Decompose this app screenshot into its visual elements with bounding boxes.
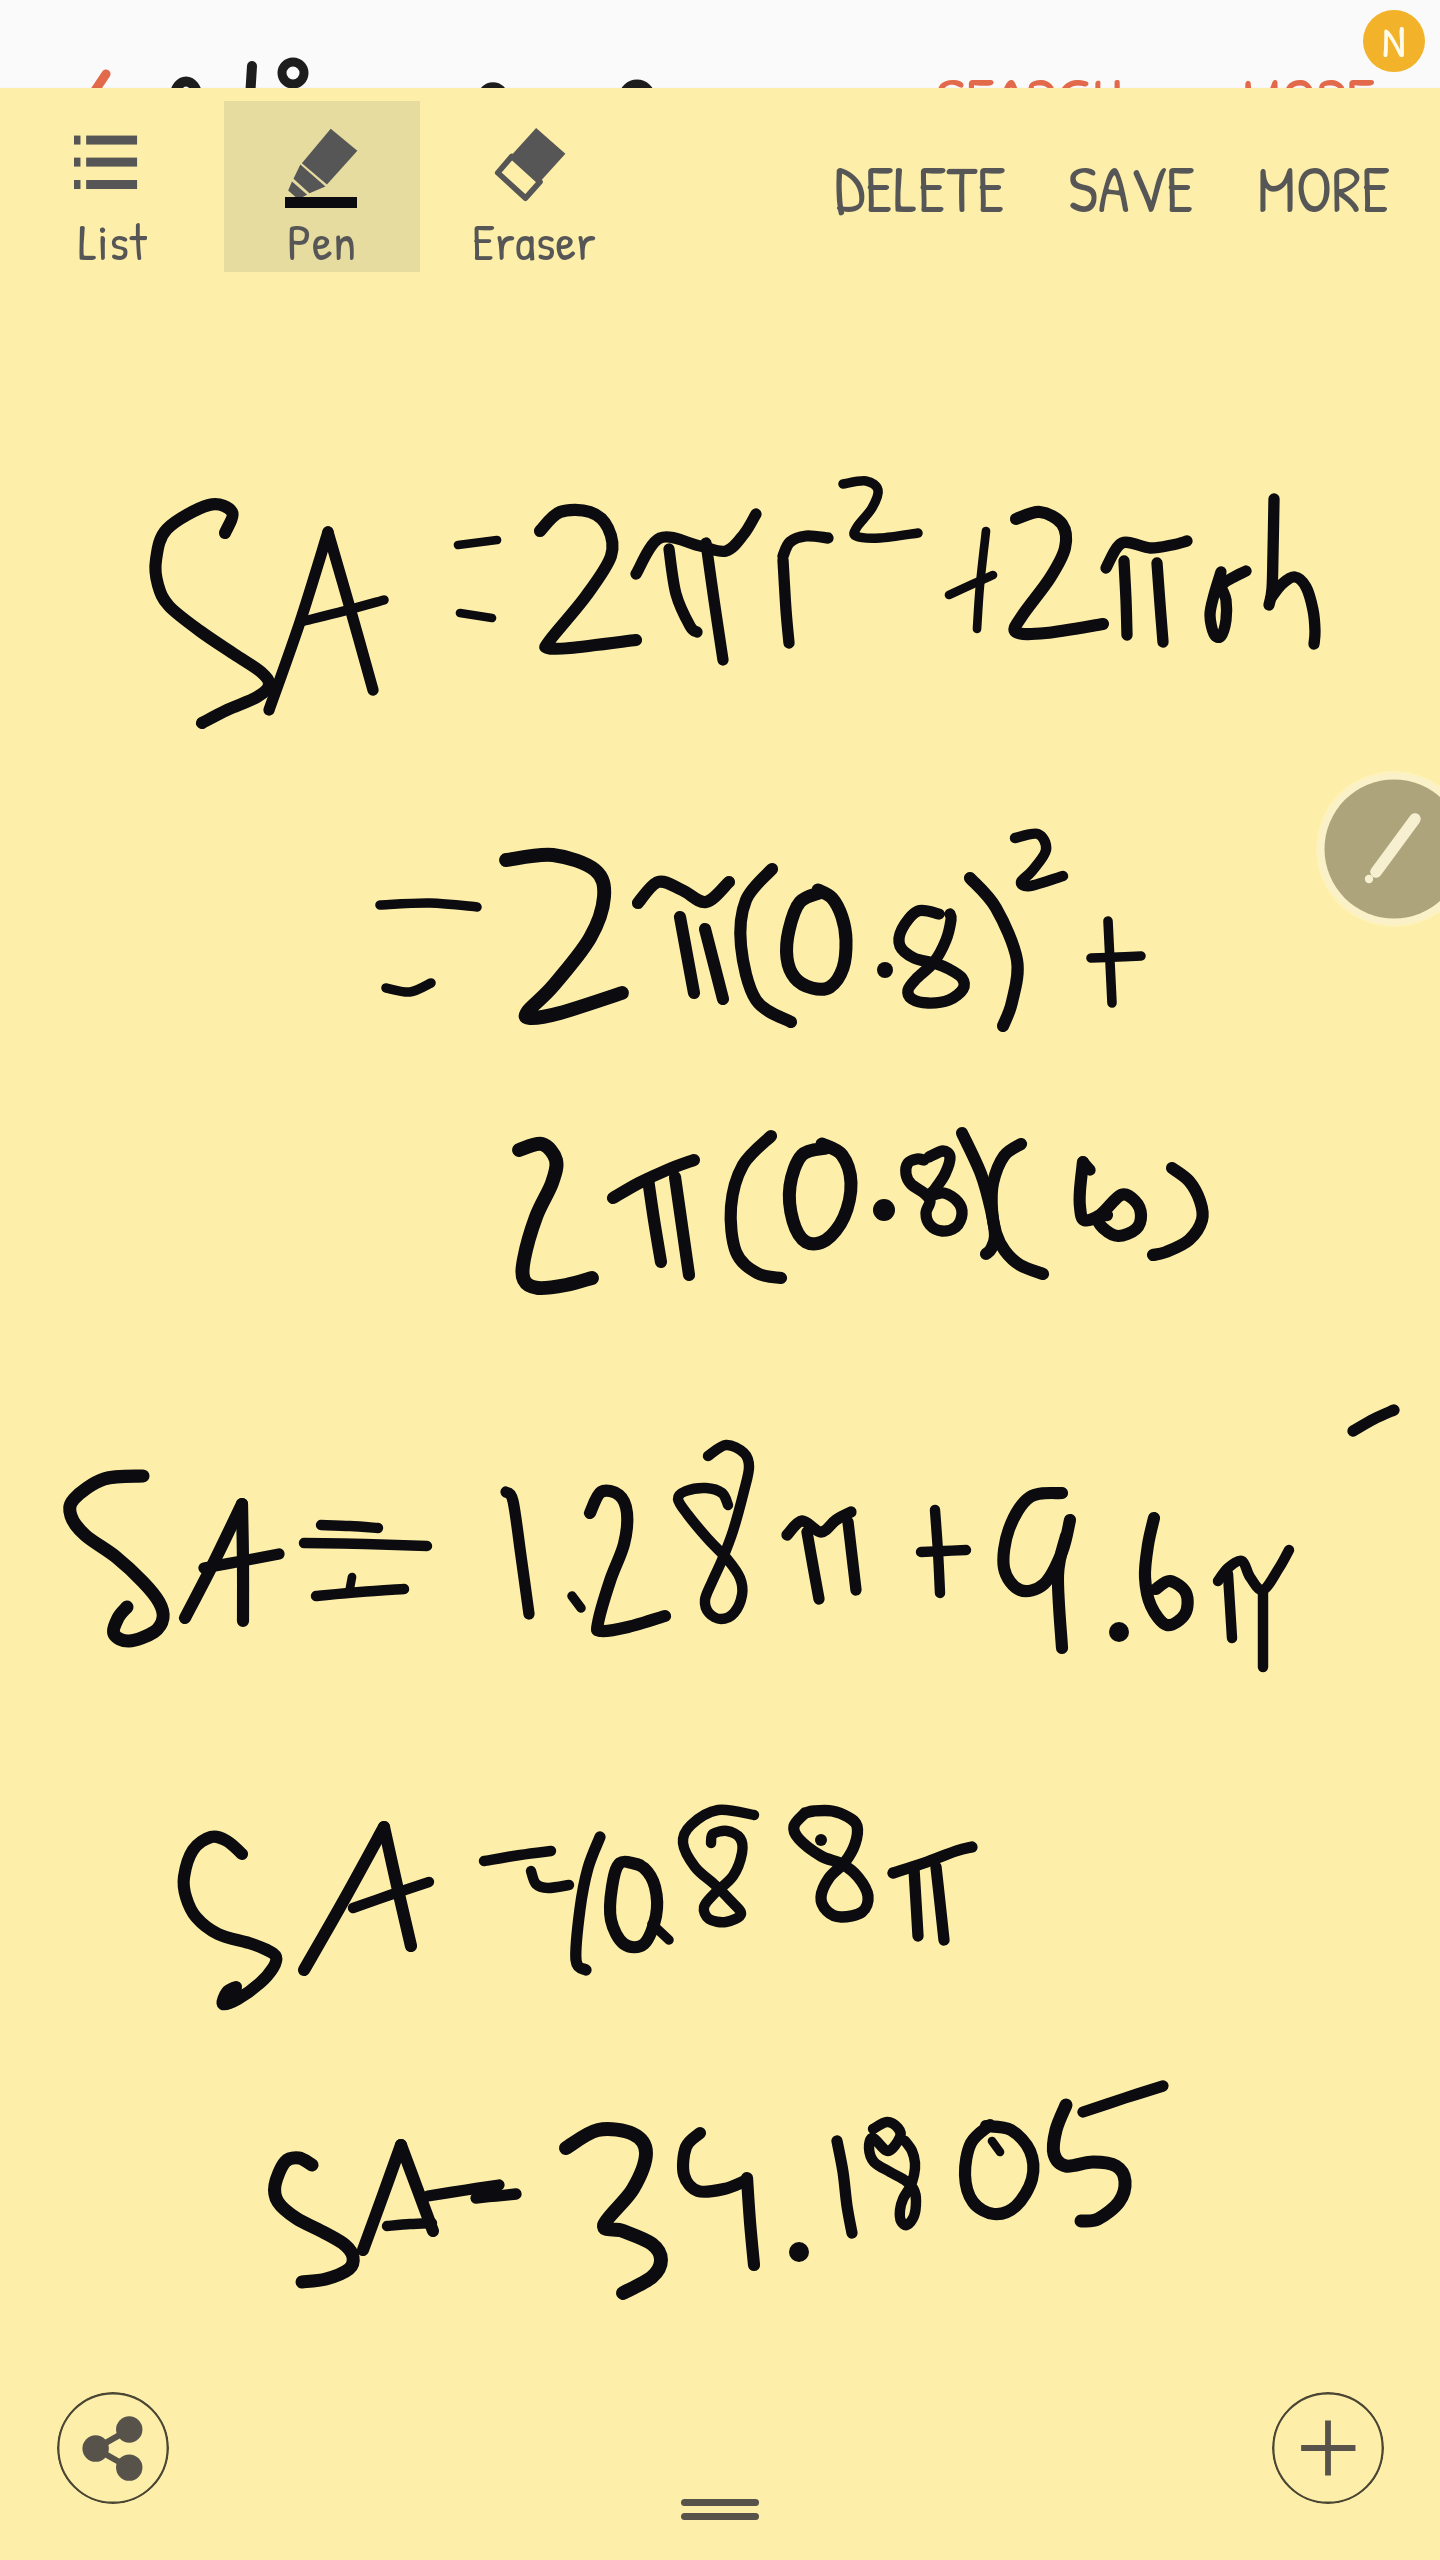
button[interactable]: Eraser — [436, 101, 632, 272]
button[interactable]: SAVE — [1064, 132, 1199, 244]
button[interactable]: MORE — [1253, 132, 1395, 244]
button[interactable]: Expand toolbar — [660, 2482, 780, 2540]
button[interactable]: List — [14, 101, 210, 272]
staticText: MORE — [1257, 144, 1391, 232]
button[interactable]: DELETE — [830, 132, 1010, 244]
staticText: MORE — [1242, 56, 1376, 96]
staticText: List — [78, 206, 147, 272]
button[interactable]: Add — [1272, 2392, 1384, 2504]
button[interactable]: Pen — [224, 101, 420, 272]
button[interactable]: Drawing canvas — [0, 280, 1440, 2560]
staticText: SEARCH — [936, 56, 1122, 96]
staticText: Pen — [287, 206, 357, 272]
button[interactable]: Pen options — [1316, 771, 1440, 929]
button[interactable]: Share — [57, 2392, 169, 2504]
staticText: DELETE — [834, 144, 1006, 232]
staticText: Eraser — [472, 206, 597, 272]
staticText: N — [1382, 11, 1406, 71]
staticText: SAVE — [1068, 144, 1195, 232]
